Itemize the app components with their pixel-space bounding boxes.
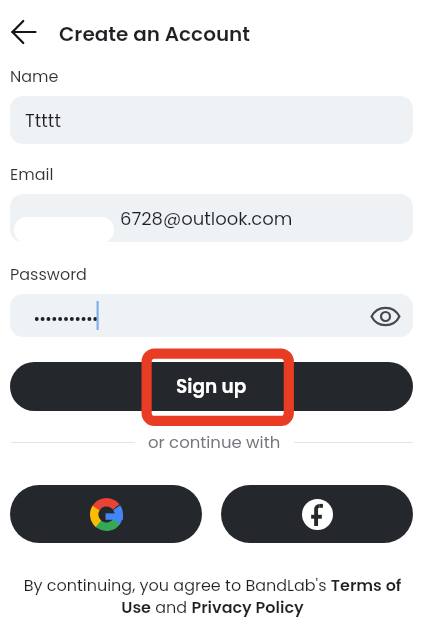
button[interactable]: Sign up <box>10 362 413 411</box>
staticText: By continuing, you agree to BandLab's Te… <box>18 574 407 619</box>
button[interactable]: Continue with Google <box>10 485 202 543</box>
staticText: Name <box>10 65 59 87</box>
staticText: Password <box>10 263 87 285</box>
button[interactable]: Show password <box>368 299 402 333</box>
staticText: Ttttt <box>25 108 61 133</box>
staticText: Create an Account <box>59 20 251 48</box>
button[interactable]: Continue with Facebook <box>221 485 413 543</box>
button[interactable]: Ttttt <box>10 96 413 144</box>
button[interactable]: 6728@outlook.com <box>10 194 413 242</box>
staticText: 6728@outlook.com <box>120 206 293 231</box>
button[interactable]: Back <box>2 10 46 54</box>
staticText: Sign up <box>176 374 247 400</box>
staticText: Email <box>10 163 54 185</box>
staticText: or continue with <box>148 431 281 454</box>
